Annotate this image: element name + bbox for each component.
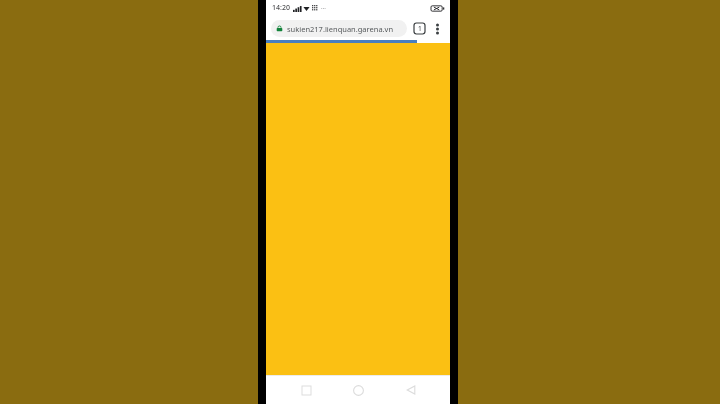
staticText: ··· (321, 4, 326, 12)
staticText: 14:20 (272, 3, 290, 13)
button[interactable]: Back (398, 377, 424, 403)
button[interactable]: Recent apps (293, 377, 319, 403)
button[interactable]: Home (345, 377, 371, 403)
staticText: 1 (418, 24, 422, 33)
staticText: sukien217.lienquan.garena.vn (287, 24, 394, 34)
button[interactable]: sukien217.lienquan.garena.vn (271, 20, 407, 37)
button[interactable]: Switch tabs, 1 tab open (412, 21, 427, 36)
button[interactable]: More options (430, 21, 445, 36)
